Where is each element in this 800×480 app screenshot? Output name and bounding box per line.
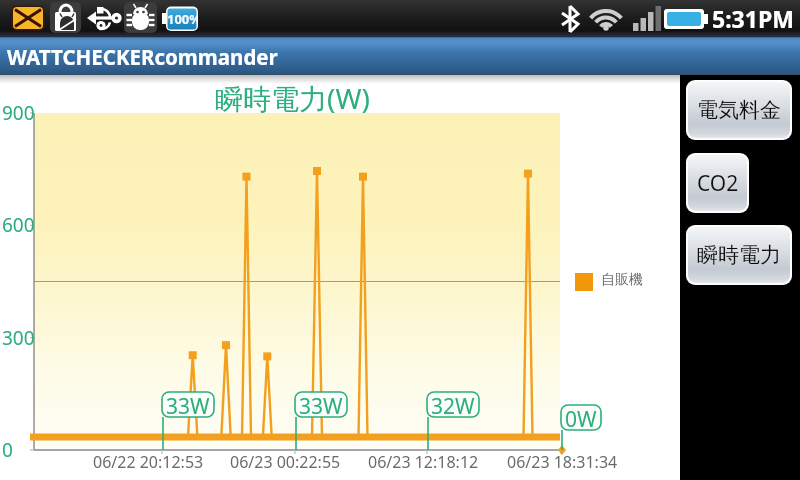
staticText: 0W — [565, 405, 597, 430]
button[interactable]: 電気料金 — [688, 82, 790, 138]
staticText: 電気料金 — [697, 97, 781, 123]
staticText: 33W — [166, 392, 210, 417]
staticText: 900 — [2, 100, 35, 126]
staticText: 32W — [431, 392, 475, 417]
staticText: WATTCHECKERcommander — [7, 43, 278, 71]
button[interactable]: 瞬時電力 — [688, 227, 790, 283]
staticText: 100% — [167, 10, 197, 28]
staticText: 5:31PM — [712, 3, 794, 34]
staticText: 0 — [2, 437, 13, 463]
staticText: 06/23 12:18:12 — [368, 451, 479, 473]
staticText: CO2 — [697, 169, 739, 198]
staticText: 33W — [299, 392, 343, 417]
staticText: 300 — [2, 325, 35, 351]
staticText: 瞬時電力(W) — [215, 79, 370, 117]
staticText: 06/23 00:22:55 — [230, 451, 341, 473]
staticText: 自販機 — [601, 271, 643, 289]
staticText: 06/22 20:12:53 — [93, 451, 204, 473]
button[interactable]: CO2 — [688, 155, 747, 211]
staticText: 瞬時電力 — [697, 242, 781, 268]
staticText: 600 — [2, 212, 35, 238]
staticText: 06/23 18:31:34 — [507, 451, 618, 473]
